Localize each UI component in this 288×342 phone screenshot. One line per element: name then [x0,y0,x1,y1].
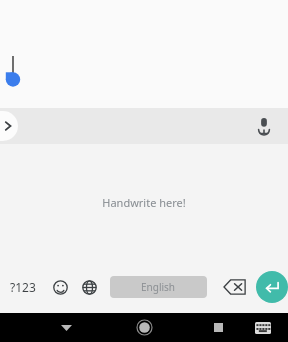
button[interactable]: Switch keyboard [248,313,278,342]
staticText: Handwrite here! [102,195,186,210]
other: Text cursor handle [0,52,30,92]
button[interactable]: Recent apps [202,313,234,342]
button[interactable]: Change keyboard language [74,264,104,310]
staticText: ?123 [10,279,36,295]
button[interactable]: Handwriting input area [0,144,288,261]
button[interactable]: Voice input [248,110,280,142]
button[interactable]: Home [128,313,160,342]
button[interactable]: Expand suggestions [0,111,18,141]
staticText: English [141,280,176,294]
button[interactable]: Backspace [215,264,255,310]
button[interactable]: ?123 [0,264,46,310]
button[interactable]: Emoji [46,264,74,310]
button[interactable]: English [110,276,207,298]
button[interactable]: Enter [255,264,288,310]
button[interactable]: Hide keyboard [50,313,82,342]
